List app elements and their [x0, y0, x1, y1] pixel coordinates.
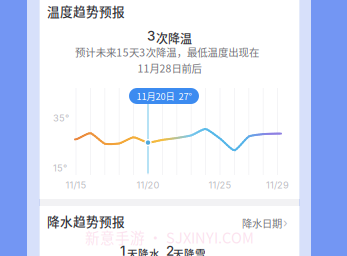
- staticText: 天降水: [127, 245, 160, 256]
- staticText: 11月28日前后: [137, 60, 201, 76]
- staticText: 次降温: [156, 29, 192, 47]
- staticText: 11/20: [136, 179, 159, 191]
- staticText: 11/29: [266, 179, 289, 191]
- staticText: 35°: [53, 112, 69, 124]
- staticText: 天降雪: [173, 245, 206, 256]
- staticText: 1: [120, 243, 126, 256]
- staticText: 11月20日 27°: [136, 89, 191, 103]
- staticText: 2: [166, 243, 174, 256]
- staticText: 降水趋势预报: [47, 212, 125, 230]
- staticText: 降水日期: [242, 216, 282, 230]
- staticText: 预计未来15天3次降温，最低温度出现在: [75, 44, 259, 60]
- staticText: ›: [283, 216, 288, 230]
- staticText: 3: [147, 28, 155, 44]
- staticText: 15°: [53, 162, 67, 174]
- staticText: 新意手游 · SJXINYI.COM: [85, 226, 254, 248]
- staticText: 温度趋势预报: [47, 2, 125, 20]
- button[interactable]: 降水日期: [0, 0, 60, 14]
- staticText: 11/15: [65, 179, 86, 191]
- staticText: 11/25: [208, 179, 231, 191]
